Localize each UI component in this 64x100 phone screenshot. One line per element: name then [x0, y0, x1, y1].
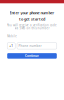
staticText: Continue — [25, 54, 39, 58]
staticText: You will receive a verification code — [7, 23, 57, 27]
staticText: Mobile — [7, 35, 16, 38]
staticText: Phone number — [18, 44, 41, 48]
button[interactable]: Continue — [7, 53, 57, 59]
button[interactable]: Country code — [7, 43, 15, 49]
staticText: Enter your phone number — [9, 10, 54, 15]
button[interactable]: Phone number — [17, 43, 57, 49]
staticText: via SMS on this number — [14, 26, 49, 30]
staticText: to get started — [19, 16, 45, 22]
staticText: +1 — [9, 44, 13, 48]
